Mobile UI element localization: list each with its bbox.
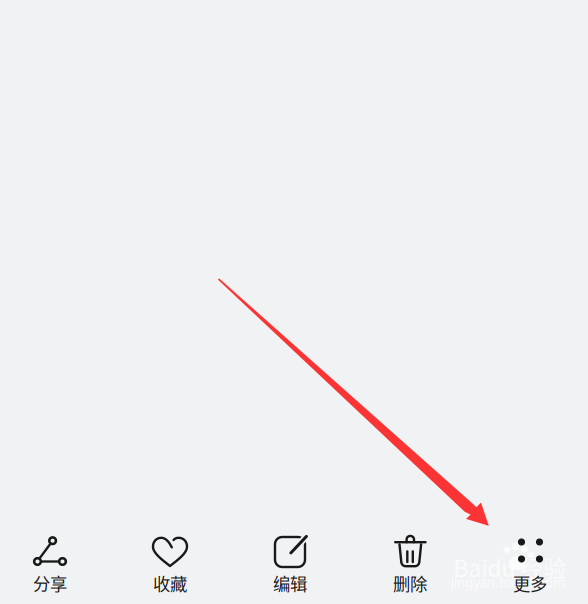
button[interactable]: 收藏 bbox=[110, 528, 230, 594]
button[interactable]: 分享 bbox=[0, 528, 110, 594]
staticText: 收藏 bbox=[153, 570, 187, 596]
button[interactable]: 编辑 bbox=[230, 528, 350, 594]
staticText: Baidu 经验 bbox=[453, 551, 566, 583]
staticText: 分享 bbox=[33, 570, 67, 596]
staticText: 更多 bbox=[513, 570, 547, 596]
staticText: 编辑 bbox=[273, 570, 307, 596]
button[interactable]: 更多 bbox=[470, 528, 588, 594]
staticText: jingyan.baidu.com bbox=[451, 575, 565, 591]
staticText: 删除 bbox=[393, 570, 427, 596]
button[interactable]: 删除 bbox=[350, 528, 470, 594]
